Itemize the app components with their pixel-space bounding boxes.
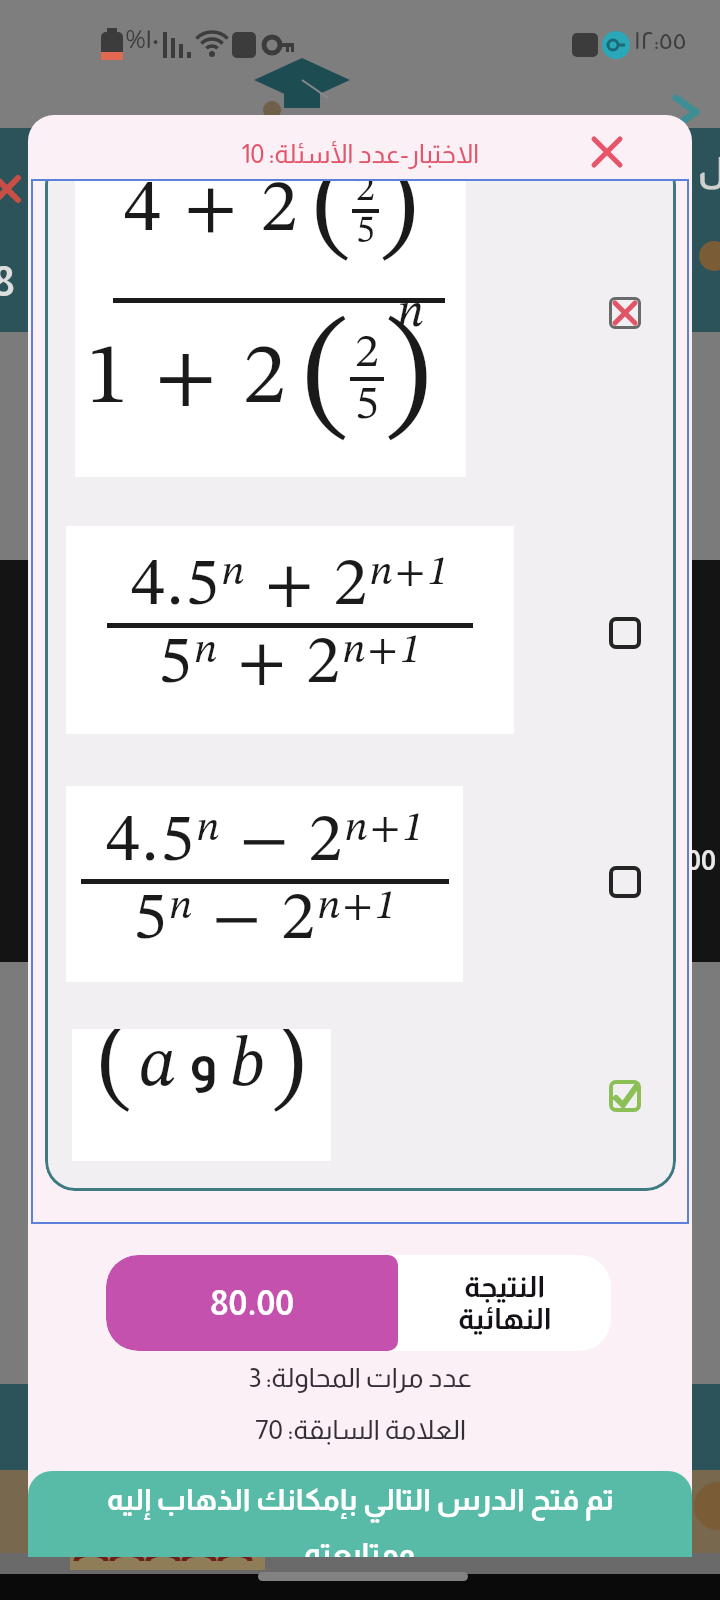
button[interactable] — [609, 617, 641, 649]
button[interactable] — [609, 1080, 641, 1112]
staticText: ) — [271, 1029, 306, 1117]
staticText: ( — [303, 311, 350, 447]
staticText: 1 + 2 — [86, 336, 289, 422]
staticText: النتيجة — [464, 1271, 545, 1303]
staticText: 5n − 2n+1 — [133, 886, 398, 955]
button[interactable]: تم فتح الدرس التالي بإمكانك الذهاب إليه — [28, 1471, 692, 1557]
staticText: 2 — [355, 329, 379, 377]
staticText: تم فتح الدرس التالي بإمكانك الذهاب إليه — [106, 1483, 614, 1516]
staticText: 80.00 — [210, 1284, 295, 1322]
staticText: %١٠ — [126, 24, 159, 53]
staticText: و — [189, 1034, 218, 1092]
staticText: ١٢:٥٥ — [634, 26, 687, 54]
staticText: العلامة السابقة: 70 — [255, 1415, 466, 1445]
button[interactable]: 4.5n + 2n+1 — [66, 526, 514, 734]
staticText: ال — [698, 150, 720, 188]
staticText: 4.5n − 2n+1 — [106, 808, 425, 877]
button[interactable]: 4.5n − 2n+1 — [66, 786, 463, 982]
staticText: الاختبار-عدد الأسئلة: 10 — [241, 139, 479, 168]
staticText: 5 — [356, 213, 375, 251]
staticText: 5n + 2n+1 — [158, 630, 423, 699]
staticText: 4.5n + 2n+1 — [131, 552, 450, 621]
button[interactable]: ( — [72, 1029, 331, 1161]
button[interactable] — [609, 866, 641, 898]
staticText: ( — [98, 1029, 133, 1117]
staticText: ومتابعته — [304, 1537, 416, 1557]
staticText: 2 — [356, 181, 375, 209]
staticText: 00 — [686, 846, 716, 876]
button[interactable] — [609, 297, 641, 329]
staticText: ) — [384, 311, 431, 447]
button[interactable]: 4 + 2 — [75, 181, 466, 477]
staticText: 8 — [0, 258, 15, 305]
staticText: b — [230, 1032, 265, 1102]
staticText: a — [139, 1032, 177, 1102]
staticText: النهائية — [458, 1303, 552, 1335]
staticText: ( — [313, 181, 352, 267]
staticText: n — [397, 289, 425, 337]
button[interactable]: 80.00 — [106, 1255, 611, 1351]
staticText: 4 + 2 — [124, 181, 301, 248]
staticText: ) — [379, 181, 418, 267]
staticText: عدد مرات المحاولة: 3 — [248, 1363, 472, 1393]
button[interactable] — [582, 127, 632, 177]
staticText: 5 — [355, 381, 379, 429]
